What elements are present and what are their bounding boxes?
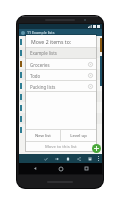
button[interactable]: Mark done xyxy=(40,154,51,163)
button[interactable]: Add list xyxy=(92,144,101,153)
button[interactable]: Archive xyxy=(84,154,95,163)
button[interactable]: Groceries xyxy=(26,59,96,70)
staticText: Move to this list xyxy=(45,144,77,150)
button[interactable]: Packing lists xyxy=(26,81,96,92)
staticText: Groceries xyxy=(30,62,50,68)
button[interactable]: Recent apps xyxy=(77,163,95,174)
staticText: Packing lists xyxy=(30,84,56,90)
button[interactable]: New list xyxy=(26,130,60,141)
staticText: New list xyxy=(35,133,51,139)
staticText: 11 Example lists xyxy=(27,30,55,35)
button[interactable]: Move to this list xyxy=(26,142,96,151)
button[interactable]: Todo xyxy=(26,70,96,81)
staticText: Move 2 items to: xyxy=(31,38,72,45)
button[interactable]: More options xyxy=(95,154,101,163)
button[interactable]: Share xyxy=(73,154,84,163)
button[interactable]: Delete xyxy=(62,154,73,163)
button[interactable]: Level up xyxy=(61,130,96,141)
staticText: Level up xyxy=(70,133,87,139)
button[interactable]: Home xyxy=(52,163,70,174)
staticText: Todo xyxy=(30,73,41,79)
button[interactable]: Example lists xyxy=(26,48,96,58)
staticText: Example lists xyxy=(30,50,57,56)
button[interactable]: Back xyxy=(26,163,44,174)
button[interactable]: Move xyxy=(51,154,62,163)
